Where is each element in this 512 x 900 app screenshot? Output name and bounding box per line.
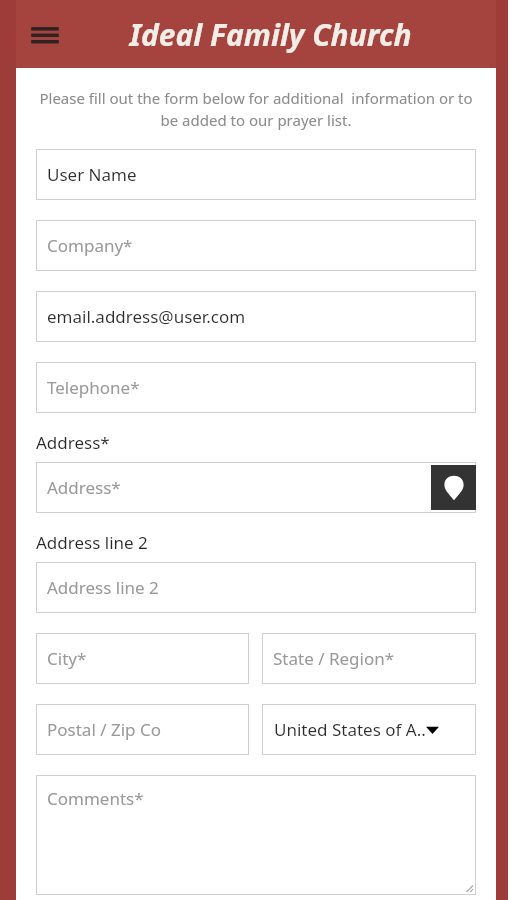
staticText: City* <box>47 647 87 670</box>
button[interactable]: City* <box>36 633 249 684</box>
button[interactable]: Company* <box>36 220 476 271</box>
staticText: Comments* <box>47 787 144 810</box>
staticText: State / Region* <box>273 647 395 670</box>
button[interactable]: State / Region* <box>262 633 476 684</box>
staticText: Address* <box>47 476 121 499</box>
button[interactable]: Comments* <box>36 775 476 895</box>
button[interactable]: Open navigation menu <box>24 13 66 55</box>
button[interactable]: email.address@user.com <box>36 291 476 342</box>
staticText: United States of A.. <box>274 718 426 741</box>
staticText: Address line 2 <box>36 531 148 554</box>
staticText: User Name <box>47 163 137 186</box>
staticText: Postal / Zip Co <box>47 718 161 741</box>
staticText: email.address@user.com <box>47 305 246 328</box>
staticText: Company* <box>47 234 133 257</box>
staticText: Telephone* <box>47 376 140 399</box>
button[interactable]: Telephone* <box>36 362 476 413</box>
button[interactable]: Postal / Zip Co <box>36 704 249 755</box>
staticText: Address* <box>36 431 110 454</box>
staticText: Address line 2 <box>47 576 159 599</box>
staticText: Ideal Family Church <box>129 14 412 55</box>
button[interactable]: Address* <box>36 462 476 513</box>
staticText: Please fill out the form below for addit… <box>36 88 476 131</box>
button[interactable]: User Name <box>36 149 476 200</box>
button[interactable]: United States of A.. <box>262 704 476 755</box>
button[interactable]: Address line 2 <box>36 562 476 613</box>
button[interactable]: Pick location on map <box>431 465 476 510</box>
